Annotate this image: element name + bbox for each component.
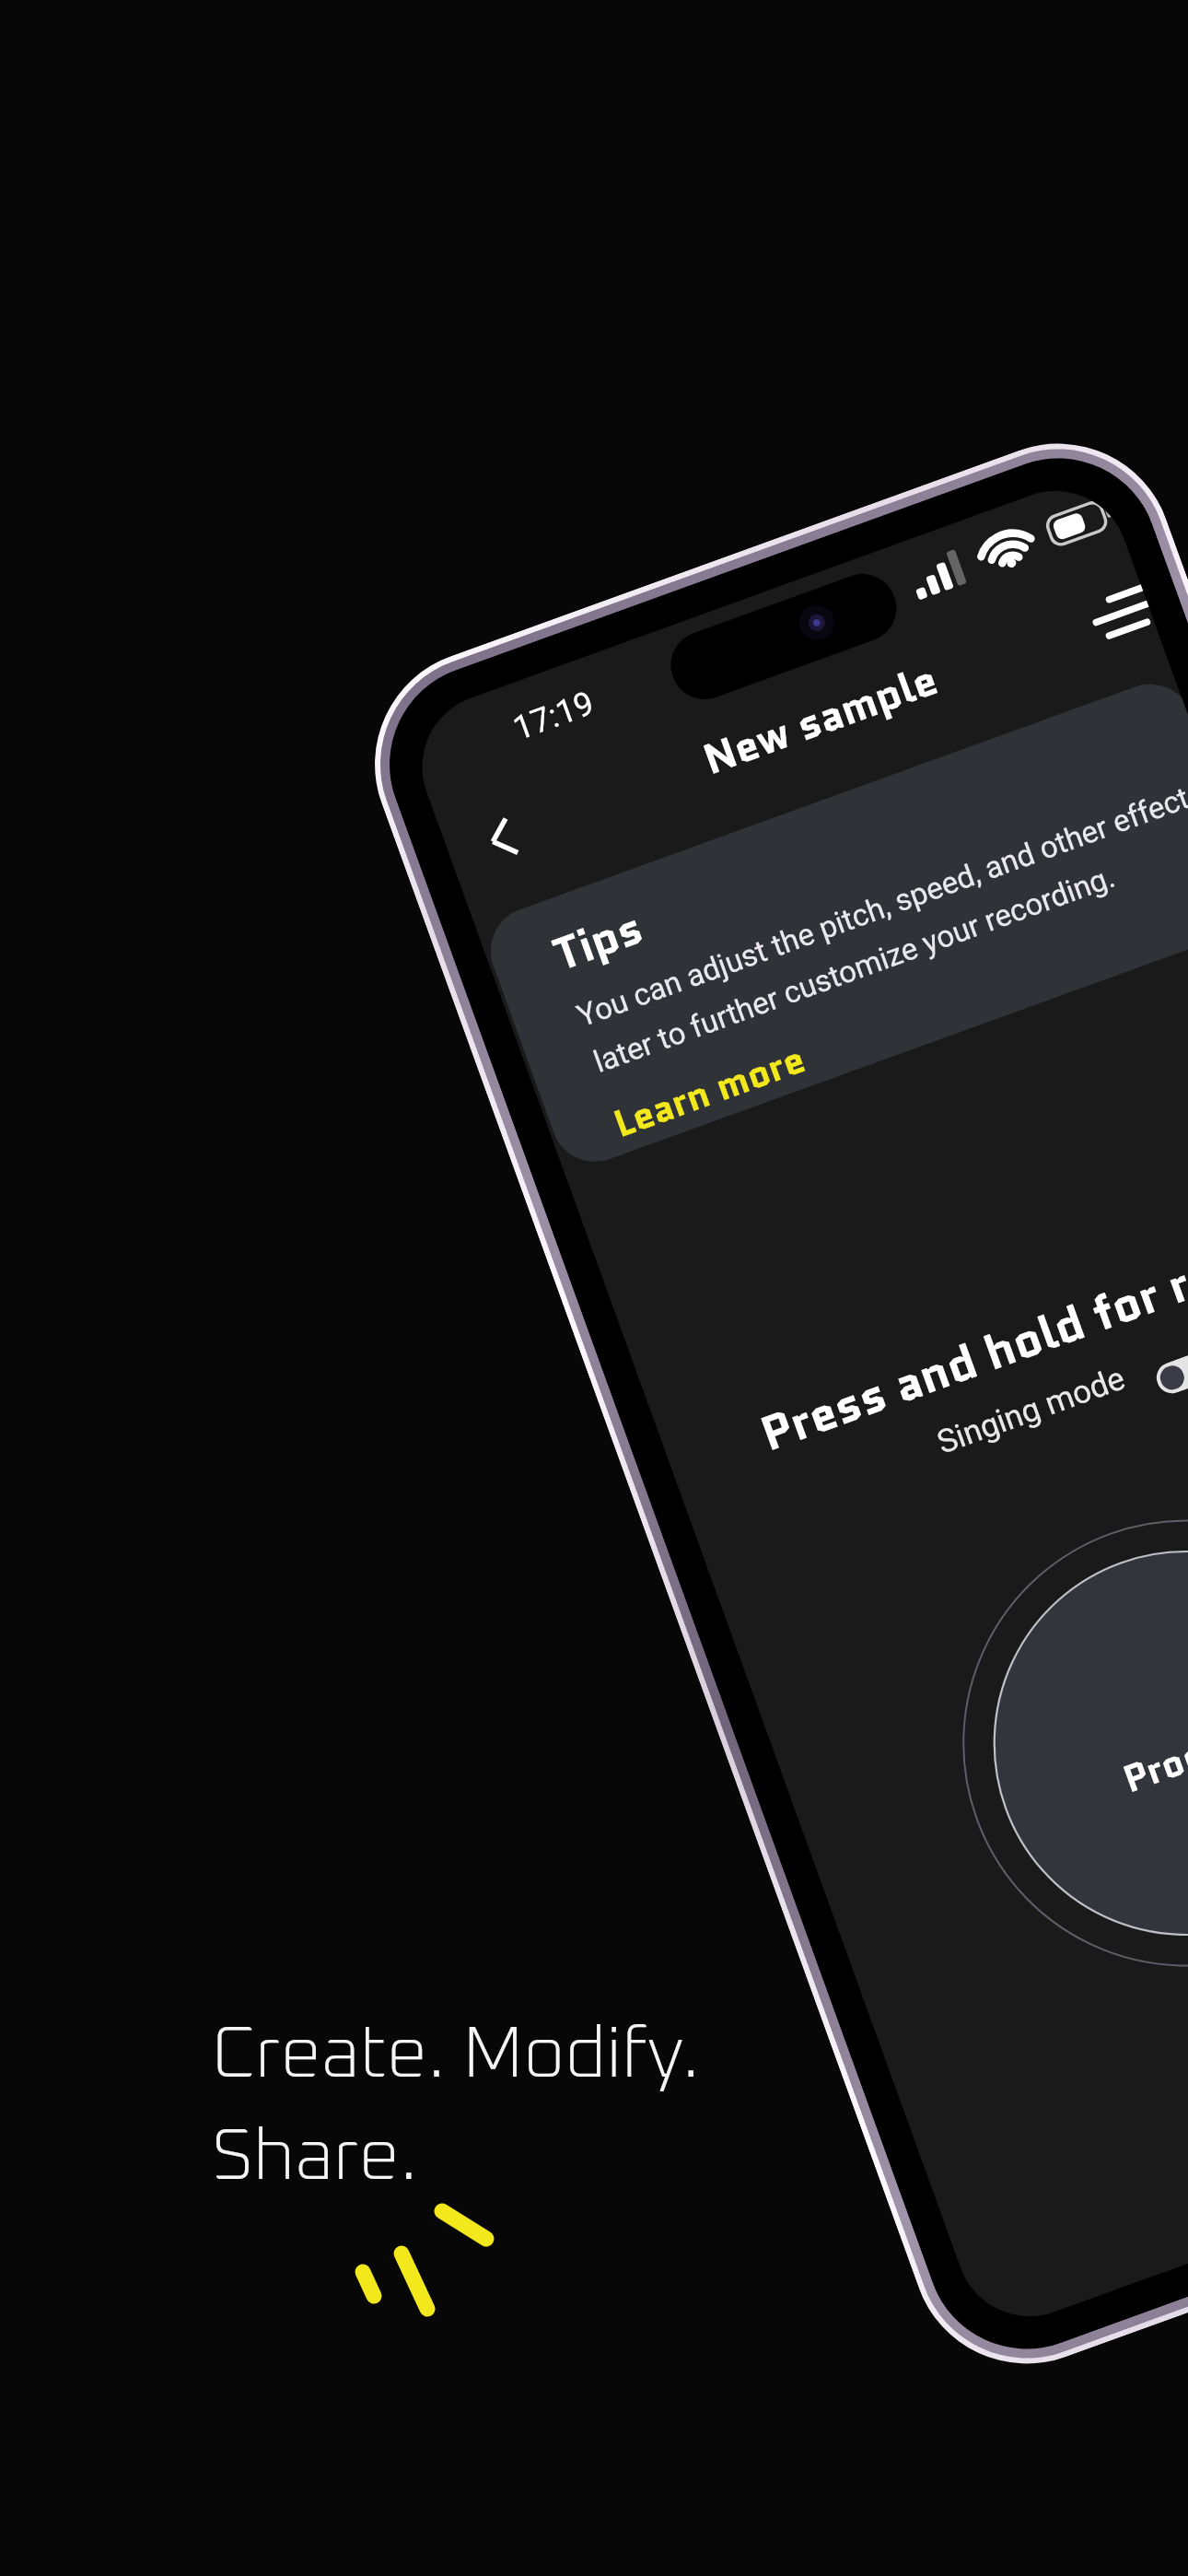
staticText: Singing mode <box>932 1359 1130 1462</box>
button[interactable]: Menu <box>1076 567 1161 661</box>
staticText: You can adjust the pitch, speed, and oth… <box>572 774 1188 1034</box>
staticText: Share. <box>212 2122 418 2194</box>
staticText: Create. Modify. <box>212 2020 700 2091</box>
staticText: later to further customize your recordin… <box>589 858 1120 1080</box>
button[interactable]: Singing mode <box>1152 1349 1188 1398</box>
button[interactable]: Tips <box>478 673 1188 1174</box>
staticText: Learn more <box>606 1032 813 1151</box>
staticText: Process <box>1116 1706 1188 1806</box>
staticText: New sample <box>695 649 946 790</box>
button[interactable]: Back <box>462 790 557 884</box>
staticText: Tips <box>545 895 652 987</box>
staticText: Press and hold for recording <box>752 1184 1188 1468</box>
staticText: 17:19 <box>508 684 599 748</box>
